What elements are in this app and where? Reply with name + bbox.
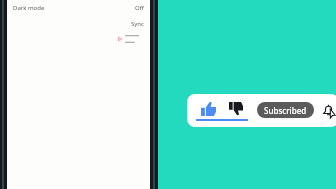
staticText: Dark mode [13, 4, 45, 12]
button[interactable]: Play [7, 32, 150, 46]
button[interactable]: Like [195, 94, 222, 127]
other: Play [117, 36, 123, 42]
staticText: Sync [131, 20, 144, 28]
button[interactable]: Notifications [318, 94, 336, 127]
staticText: Off [135, 4, 144, 12]
staticText: Subscribed [264, 105, 307, 116]
button[interactable]: Subscribed [257, 102, 314, 118]
button[interactable]: Sync [7, 16, 150, 32]
button[interactable]: Dislike [223, 94, 249, 127]
button[interactable]: Dark mode [7, 0, 150, 16]
